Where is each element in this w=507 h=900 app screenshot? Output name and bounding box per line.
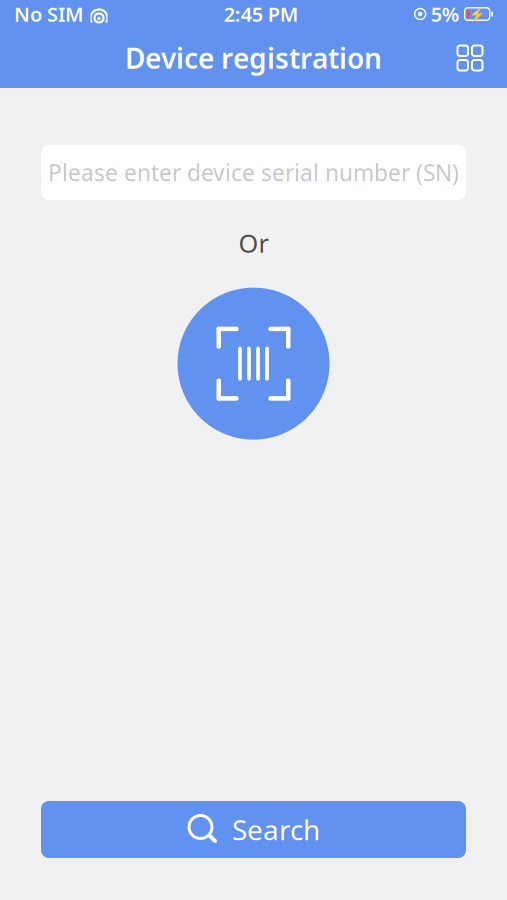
staticText: No SIM [14,1,84,27]
button[interactable]: Grid view [448,36,492,80]
staticText: ⚡ [469,6,486,22]
staticText: 5% [431,1,460,27]
staticText: Or [238,226,268,260]
button[interactable]: Please enter device serial number (SN) [41,145,466,200]
staticText: Device registration [125,39,382,77]
button[interactable]: Search [41,801,466,858]
staticText: Search [232,811,320,848]
staticText: Please enter device serial number (SN) [48,157,459,187]
button[interactable]: Scan barcode [177,288,329,440]
staticText: 2:45 PM [224,1,299,27]
